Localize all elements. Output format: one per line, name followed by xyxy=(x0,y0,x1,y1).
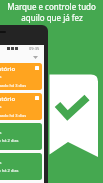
staticText: criado há 2 dias xyxy=(0,138,19,143)
button[interactable]: Relatório xyxy=(0,93,42,120)
staticText: atualizado há 3 dias xyxy=(0,113,27,118)
button[interactable]: Relatório xyxy=(0,63,42,90)
staticText: Relatório xyxy=(0,95,16,103)
staticText: Marque e controle tudo xyxy=(7,1,96,12)
staticText: Relatório xyxy=(0,65,16,73)
staticText: 9 itens xyxy=(0,160,2,165)
staticText: aquilo que já fez xyxy=(21,12,83,23)
staticText: 9 itens xyxy=(0,104,2,109)
staticText: 9 itens xyxy=(0,74,2,79)
staticText: atualizado há 3 dias xyxy=(0,83,27,88)
button[interactable]: Filtrar xyxy=(31,53,40,62)
staticText: 9 itens xyxy=(0,130,2,135)
staticText: 09:35 xyxy=(29,46,40,51)
button[interactable]: 9 itens xyxy=(0,123,42,150)
button[interactable]: 9 itens xyxy=(0,153,42,180)
staticText: criado há 2 dias xyxy=(0,168,19,173)
